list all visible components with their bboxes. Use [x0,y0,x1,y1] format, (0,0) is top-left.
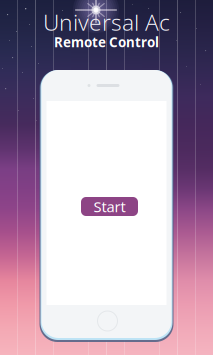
staticText: Remote Control [54,33,159,51]
staticText: Start [93,197,125,216]
staticText: Universal Ac [43,7,170,37]
button[interactable]: Start [81,197,138,216]
